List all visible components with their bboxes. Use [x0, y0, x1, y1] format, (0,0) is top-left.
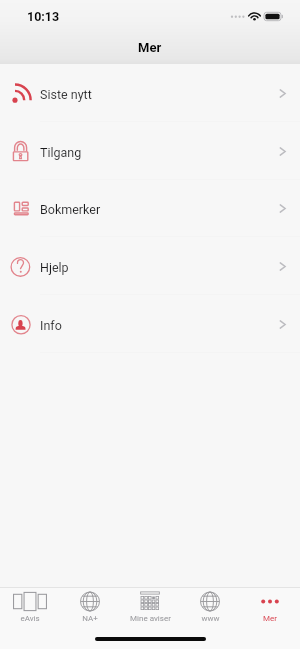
staticText: Info — [40, 318, 62, 333]
staticText: NA+ — [82, 614, 98, 623]
button[interactable]: Mine aviser — [120, 588, 180, 623]
button[interactable]: Info — [0, 295, 300, 353]
button[interactable]: eAvis — [0, 588, 60, 623]
staticText: Mine aviser — [130, 614, 171, 623]
staticText: Hjelp — [40, 260, 69, 275]
staticText: Mer — [138, 40, 162, 55]
staticText: www — [201, 614, 220, 623]
button[interactable]: Hjelp — [0, 237, 300, 295]
staticText: Siste nytt — [40, 87, 92, 102]
button[interactable]: NA+ — [60, 588, 120, 623]
button[interactable]: Siste nytt — [0, 64, 300, 122]
staticText: Tilgang — [40, 145, 82, 160]
button[interactable]: Tilgang — [0, 122, 300, 180]
button[interactable]: Bokmerker — [0, 180, 300, 237]
staticText: Bokmerker — [40, 202, 101, 217]
staticText: eAvis — [20, 614, 40, 623]
button[interactable]: Mer — [240, 588, 300, 623]
staticText: Mer — [263, 614, 277, 623]
staticText: 10:13 — [27, 9, 60, 24]
button[interactable]: www — [180, 588, 240, 623]
